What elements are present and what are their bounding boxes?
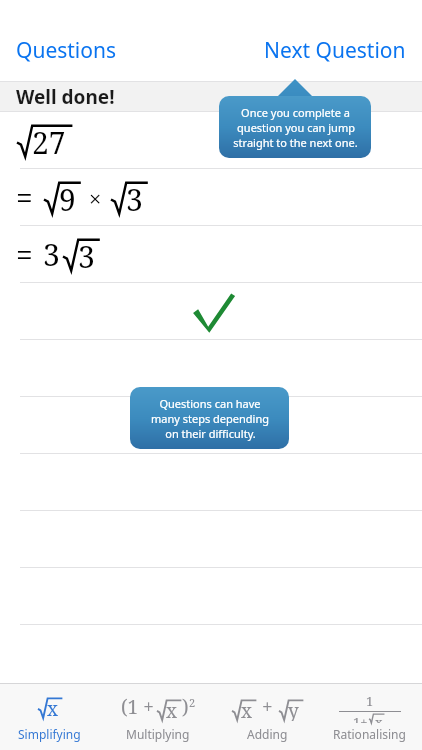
staticText: many steps depending	[151, 411, 269, 426]
button[interactable]: Multiplying	[99, 683, 217, 750]
staticText: 3	[78, 236, 95, 272]
staticText: Once you complete a	[241, 105, 350, 120]
button[interactable]: Next Question	[260, 32, 410, 69]
staticText: Next Question	[264, 36, 406, 65]
button[interactable]: Adding	[217, 683, 317, 750]
staticText: straight to the next one.	[233, 135, 358, 150]
staticText: Well done!	[16, 84, 115, 110]
staticText: Questions can have	[159, 396, 261, 411]
button[interactable]: =	[0, 169, 422, 226]
button[interactable]	[0, 511, 422, 568]
staticText: =	[16, 234, 33, 275]
button[interactable]: 27	[0, 112, 422, 169]
staticText: Multiplying	[126, 726, 190, 742]
staticText: Adding	[247, 726, 288, 742]
staticText: 1+	[353, 713, 368, 723]
staticText: (1 +	[121, 694, 154, 720]
staticText: x	[166, 698, 177, 721]
button[interactable]: Questions	[12, 32, 121, 69]
staticText: 2	[189, 695, 196, 710]
staticText: Questions	[16, 36, 117, 65]
button[interactable]	[0, 340, 422, 397]
button[interactable]	[0, 397, 422, 454]
staticText: question you can jump	[237, 120, 355, 135]
staticText: ×	[89, 183, 102, 213]
staticText: Rationalising	[333, 726, 406, 742]
staticText: 3	[126, 179, 143, 215]
staticText: +	[257, 694, 278, 720]
staticText: x	[241, 698, 252, 721]
button[interactable]: Simplifying	[0, 683, 99, 750]
button[interactable]: Rationalising	[317, 683, 422, 750]
button[interactable]	[0, 283, 422, 340]
staticText: 9	[59, 179, 76, 215]
staticText: )	[182, 694, 189, 720]
button[interactable]: =	[0, 226, 422, 283]
staticText: 1	[366, 692, 374, 710]
staticText: y	[288, 698, 299, 721]
button[interactable]	[0, 568, 422, 625]
staticText: 3	[43, 234, 60, 275]
button[interactable]	[0, 454, 422, 511]
staticText: x	[47, 696, 58, 719]
staticText: Simplifying	[18, 726, 81, 742]
staticText: on their difficulty.	[165, 426, 256, 441]
staticText: x	[375, 713, 383, 723]
staticText: =	[16, 177, 33, 218]
staticText: 27	[32, 122, 66, 158]
